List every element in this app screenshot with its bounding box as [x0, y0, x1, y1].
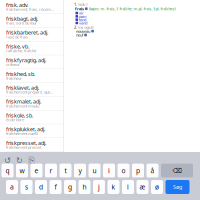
button[interactable]: Undo — [1, 149, 13, 166]
button[interactable]: y — [74, 164, 86, 178]
button[interactable]: frisk, adv. — [0, 0, 63, 14]
button[interactable]: friskplukket, adj. — [0, 124, 63, 138]
staticText: friskbagt, adj. — [6, 15, 38, 22]
button[interactable]: Søg — [165, 180, 189, 194]
button[interactable]: e — [30, 164, 42, 178]
button[interactable]: r — [45, 164, 57, 178]
button[interactable]: u — [88, 164, 100, 178]
button[interactable]: h — [78, 180, 90, 194]
staticText: y — [78, 166, 81, 175]
button[interactable]: k — [107, 180, 119, 194]
staticText: friskmalet, adj. — [6, 98, 41, 105]
staticText: 2. — [74, 24, 77, 30]
button[interactable]: friskfyragtig, adj. — [0, 55, 63, 69]
staticText: (bøjes: m. frais, f. fraîche; m.pl. frai… — [89, 6, 176, 11]
staticText: å — [150, 166, 154, 175]
staticText: frisklavet, adj. — [6, 84, 39, 91]
staticText: crâneur — [6, 62, 20, 67]
staticText: fraîchement cueilli — [6, 131, 38, 136]
staticText: u — [92, 166, 96, 175]
staticText: d — [39, 183, 43, 191]
staticText: ↻ — [16, 156, 23, 165]
staticText: fraîchement préparé, que... — [6, 89, 53, 95]
staticText: e — [34, 166, 38, 175]
button[interactable]: å — [146, 164, 158, 178]
button[interactable]: t — [59, 164, 71, 178]
button[interactable]: pain — [75, 15, 200, 18]
staticText: friskplukket, adj. — [6, 126, 45, 133]
staticText: friskbarberet, adj. — [6, 29, 48, 36]
button[interactable]: friskmalet, adj. — [0, 97, 63, 110]
button[interactable]: Play pronunciation — [91, 30, 94, 32]
staticText: ø — [155, 183, 159, 191]
button[interactable]: i — [103, 164, 115, 178]
staticText: rafraîchir, fraîchir — [6, 48, 37, 53]
button[interactable]: friskbarberet, adj. — [0, 28, 63, 41]
button[interactable]: frisklavet, adj. — [0, 83, 63, 97]
staticText: (ny også) — [78, 24, 93, 30]
button[interactable]: s — [20, 180, 32, 194]
staticText: air — [79, 10, 84, 16]
button[interactable]: friskhed, sb. — [0, 69, 63, 83]
staticText: (adv.) — [78, 1, 87, 7]
staticText: friskole, sb. — [6, 112, 33, 119]
staticText: nouveau — [76, 28, 90, 34]
button[interactable]: Redo — [13, 149, 25, 166]
button[interactable]: j — [93, 180, 105, 194]
button[interactable]: q — [1, 164, 13, 178]
button[interactable]: ⌫ — [161, 164, 193, 178]
staticText: frais, sorti du four — [6, 20, 37, 26]
button[interactable]: tand — [75, 18, 200, 21]
button[interactable]: o — [117, 164, 129, 178]
button[interactable]: air — [75, 11, 200, 15]
button[interactable]: friske, vb. — [0, 41, 63, 55]
staticText: friskfyragtig, adj. — [6, 57, 46, 64]
button[interactable]: l — [122, 180, 134, 194]
staticText: tand — [79, 17, 86, 22]
button[interactable]: æ — [136, 180, 148, 194]
staticText: æ — [139, 183, 145, 191]
staticText: friske, vb. — [6, 43, 29, 50]
staticText: f — [54, 183, 56, 191]
staticText: friskhed, sb. — [6, 70, 35, 77]
button[interactable]: d — [35, 180, 47, 194]
button[interactable]: a — [6, 180, 18, 194]
staticText: friskpresset, adj. — [6, 139, 46, 146]
button[interactable]: Paste — [25, 149, 37, 166]
staticText: l — [127, 183, 129, 191]
staticText: fraîchement presset — [6, 145, 41, 150]
staticText: q — [5, 166, 9, 175]
button[interactable]: p — [132, 164, 144, 178]
button[interactable]: friskpresset, adj. — [0, 138, 63, 152]
staticText: fraîcheur — [6, 76, 22, 81]
staticText: frisk, adv. — [6, 1, 28, 8]
staticText: ↺ — [4, 156, 11, 165]
staticText: s — [25, 183, 28, 191]
staticText: rasé de frais — [6, 34, 28, 39]
staticText: k — [111, 183, 115, 191]
staticText: j — [98, 183, 100, 191]
staticText: a — [10, 183, 14, 191]
staticText: fraîchement moulu — [6, 103, 39, 108]
button[interactable]: Play pronunciation — [85, 7, 88, 10]
staticText: i — [108, 166, 110, 175]
button[interactable]: friskole, sb. — [0, 110, 63, 124]
staticText: r — [49, 166, 52, 175]
button[interactable]: f — [49, 180, 61, 194]
button[interactable]: ø — [151, 180, 163, 194]
staticText: p — [136, 166, 140, 175]
button[interactable]: vand — [75, 21, 200, 25]
staticText: école libre — [6, 117, 24, 122]
button[interactable]: w — [16, 164, 28, 178]
staticText: Søg — [173, 183, 182, 191]
staticText: 1. — [74, 1, 77, 7]
staticText: t — [64, 166, 66, 175]
staticText: ⌫ — [172, 167, 181, 174]
staticText: pain — [79, 14, 86, 19]
button[interactable]: friskbagt, adj. — [0, 14, 63, 28]
staticText: vand — [79, 20, 87, 26]
button[interactable]: Play pronunciation — [84, 34, 87, 36]
staticText: ⎘ — [28, 156, 34, 164]
button[interactable]: g — [64, 180, 76, 194]
staticText: o — [121, 166, 125, 175]
